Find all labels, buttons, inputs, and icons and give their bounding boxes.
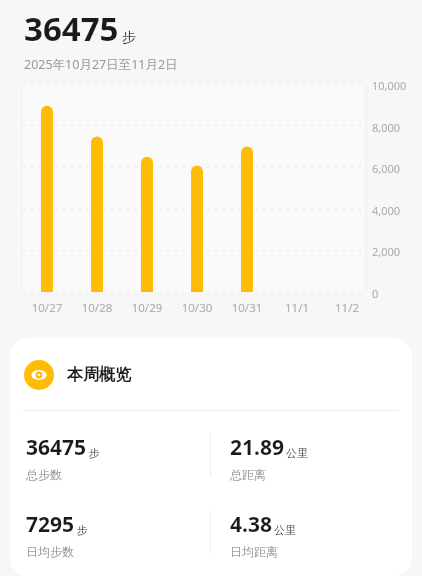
staticText: 21.89 — [230, 433, 284, 462]
staticText: 公里 — [286, 446, 308, 460]
staticText: 7295 — [26, 510, 75, 539]
staticText: 10,000 — [372, 78, 407, 93]
staticText: 6,000 — [372, 161, 401, 176]
staticText: 0 — [372, 286, 379, 301]
staticText: 步 — [122, 29, 136, 47]
staticText: 日均距离 — [230, 544, 278, 559]
staticText: 11/2 — [325, 300, 369, 316]
staticText: 4.38 — [230, 510, 272, 539]
staticText: 10/31 — [225, 300, 269, 316]
button[interactable]: 4.38 — [211, 510, 412, 559]
staticText: 总距离 — [230, 467, 266, 482]
staticText: 10/30 — [175, 300, 219, 316]
button[interactable]: 本周概览 — [10, 338, 412, 410]
staticText: 11/1 — [275, 300, 319, 316]
button[interactable]: 7295 — [10, 510, 210, 559]
staticText: 2,000 — [372, 244, 401, 259]
staticText: 36475 — [26, 433, 87, 462]
other: 本周概览 — [24, 360, 54, 390]
staticText: 8,000 — [372, 120, 401, 135]
staticText: 日均步数 — [26, 544, 74, 559]
staticText: 总步数 — [26, 467, 62, 482]
staticText: 10/28 — [75, 300, 119, 316]
staticText: 步 — [77, 523, 88, 537]
staticText: 步 — [89, 446, 100, 460]
staticText: 公里 — [274, 523, 296, 537]
staticText: 4,000 — [372, 203, 401, 218]
staticText: 10/29 — [125, 300, 169, 316]
staticText: 36475 — [24, 6, 119, 51]
button[interactable]: 21.89 — [211, 433, 412, 482]
button[interactable]: 36475 — [10, 433, 210, 482]
staticText: 本周概览 — [67, 365, 131, 385]
staticText: 10/27 — [25, 300, 69, 316]
staticText: 2025年10月27日至11月2日 — [24, 56, 178, 73]
